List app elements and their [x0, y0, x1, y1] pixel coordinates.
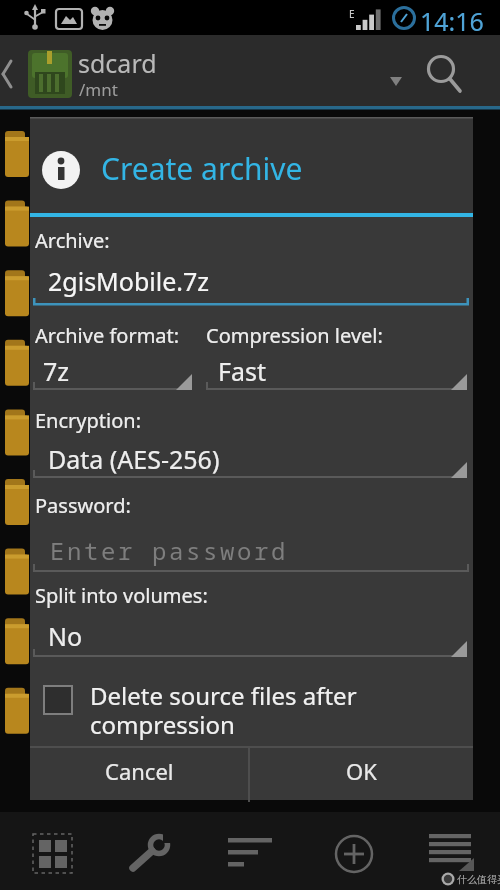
button[interactable]	[212, 816, 292, 888]
button[interactable]	[412, 816, 492, 888]
staticText: Create archive	[101, 148, 303, 189]
button[interactable]	[33, 612, 467, 660]
staticText: Password:	[35, 492, 131, 519]
button[interactable]	[420, 42, 480, 102]
button[interactable]	[0, 40, 24, 104]
staticText: Archive format:	[35, 322, 180, 349]
staticText: Cancel	[105, 756, 174, 786]
staticText: 14:16	[420, 4, 484, 38]
staticText: Delete source files after	[90, 679, 357, 712]
button[interactable]	[206, 350, 467, 398]
staticText: 7z	[43, 354, 70, 388]
staticText: compression	[90, 708, 235, 741]
button[interactable]: Cancel	[30, 744, 248, 798]
staticText: Data (AES-256)	[48, 442, 220, 476]
button[interactable]: Enter password	[30, 117, 268, 150]
staticText: Fast	[218, 354, 267, 388]
button[interactable]	[33, 350, 193, 398]
button[interactable]	[33, 437, 467, 485]
button[interactable]: 2gisMobile.7z	[30, 117, 192, 151]
button[interactable]	[12, 816, 92, 888]
staticText: Archive:	[35, 227, 110, 254]
staticText: Compression level:	[206, 322, 383, 349]
button[interactable]	[112, 816, 192, 888]
staticText: No	[48, 619, 83, 653]
staticText: Encryption:	[35, 407, 142, 434]
button[interactable]	[43, 685, 73, 715]
staticText: E	[349, 7, 355, 21]
staticText: OK	[346, 756, 377, 786]
staticText: 什么值得买	[457, 873, 500, 886]
staticText: sdcard	[78, 46, 157, 80]
button[interactable]	[312, 816, 392, 888]
staticText: Split into volumes:	[35, 582, 208, 609]
staticText: /mnt	[79, 78, 118, 101]
button[interactable]: OK	[250, 744, 473, 798]
button[interactable]	[24, 40, 174, 104]
